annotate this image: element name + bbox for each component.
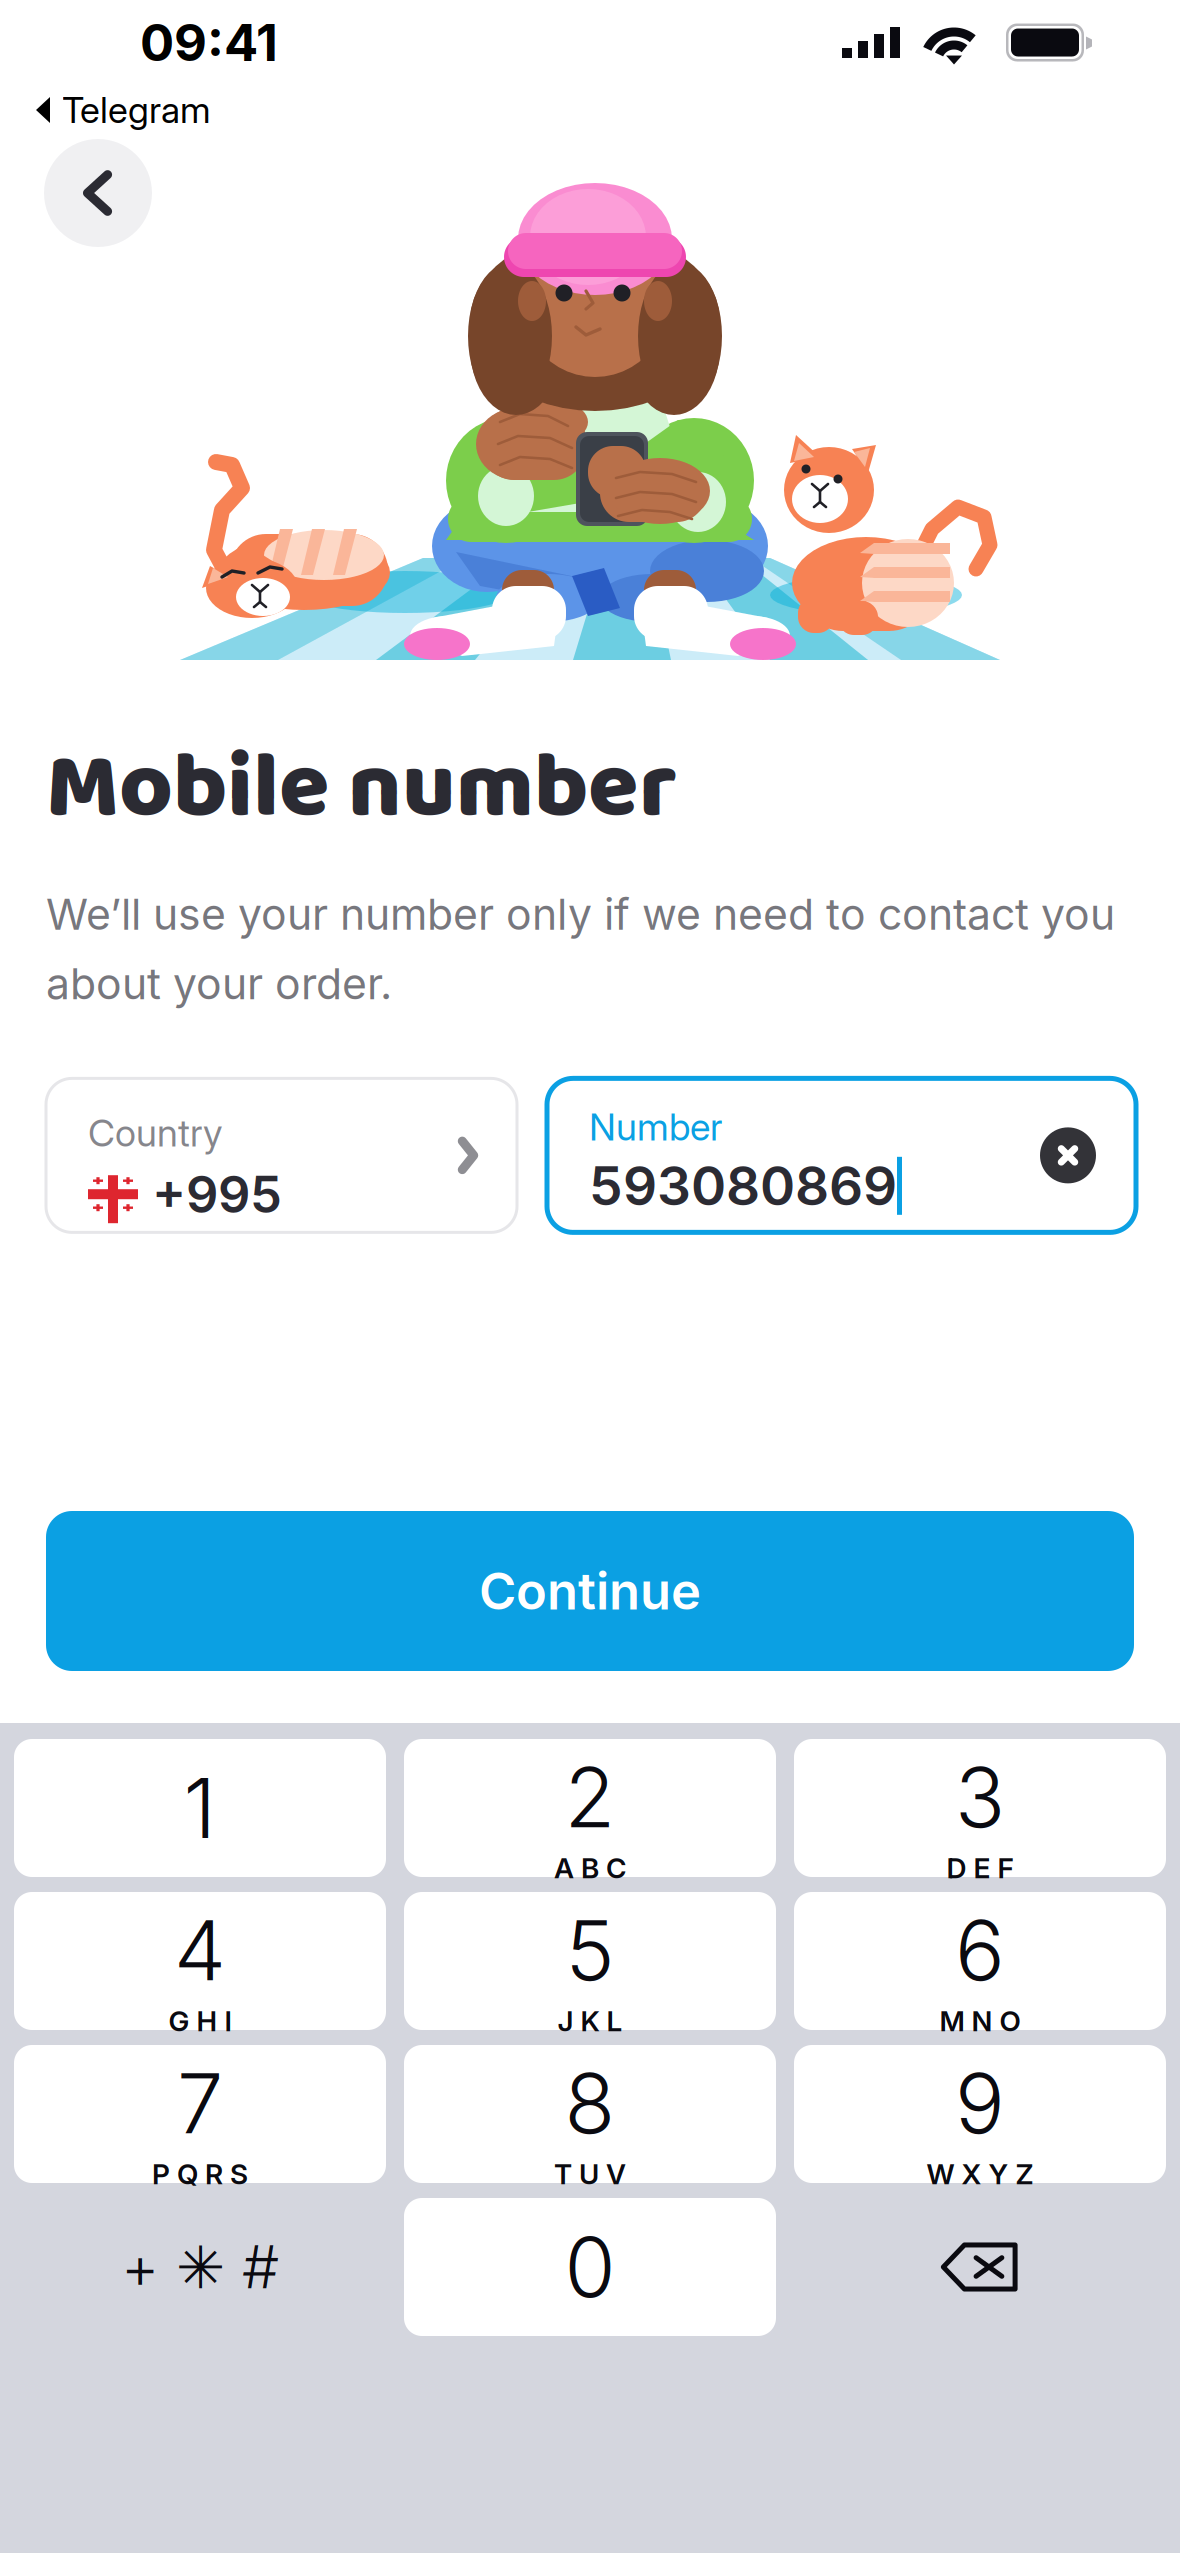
button[interactable]: 1 [14, 1739, 386, 1877]
staticText: We’ll use your number only if we need to… [46, 888, 1115, 940]
staticText: D E F [946, 1851, 1013, 1885]
staticText: Mobile number [46, 715, 677, 862]
staticText: J K L [557, 2004, 622, 2038]
staticText: Continue [479, 1560, 701, 1622]
staticText: Telegram [62, 88, 211, 132]
button[interactable]: 7 [14, 2045, 386, 2183]
staticText: G H I [168, 2004, 231, 2038]
button[interactable]: 4 [14, 1892, 386, 2030]
staticText: 5 [565, 1900, 614, 2000]
button[interactable]: 5 [404, 1892, 776, 2030]
button[interactable]: Phone number [547, 1078, 1136, 1232]
button[interactable]: 0 [404, 2198, 776, 2336]
button[interactable]: 2 [404, 1739, 776, 1877]
button[interactable]: Plus star hash [14, 2198, 386, 2336]
staticText: 4 [174, 1900, 226, 2000]
button[interactable]: Delete [794, 2198, 1166, 2336]
staticText: 1 [183, 1758, 216, 1858]
staticText: about your order. [46, 958, 392, 1010]
button[interactable]: 6 [794, 1892, 1166, 2030]
staticText: Number [589, 1104, 722, 1150]
staticText: 09:41 [140, 12, 278, 73]
staticText: + ✳ # [121, 2231, 279, 2302]
button[interactable]: Country [46, 1078, 517, 1232]
button[interactable]: Continue [46, 1511, 1134, 1671]
staticText: 0 [564, 2217, 615, 2317]
staticText: Country [88, 1110, 223, 1156]
button[interactable]: Telegram [36, 88, 211, 132]
staticText: 593080869 [589, 1154, 897, 1218]
staticText: M N O [939, 2004, 1020, 2038]
staticText: 9 [955, 2053, 1005, 2153]
staticText: A B C [554, 1851, 626, 1885]
button[interactable]: 8 [404, 2045, 776, 2183]
staticText: 8 [564, 2053, 615, 2153]
staticText: W X Y Z [926, 2157, 1033, 2191]
staticText: P Q R S [152, 2157, 248, 2191]
staticText: 2 [564, 1747, 615, 1847]
button[interactable]: Back [44, 139, 152, 247]
staticText: 7 [177, 2053, 223, 2153]
staticText: 6 [955, 1900, 1005, 2000]
staticText: T U V [554, 2157, 626, 2191]
button[interactable]: 9 [794, 2045, 1166, 2183]
staticText: +995 [152, 1164, 282, 1225]
button[interactable]: 3 [794, 1739, 1166, 1877]
staticText: 3 [955, 1747, 1005, 1847]
